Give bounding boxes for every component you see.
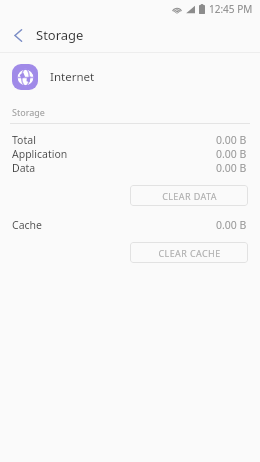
staticText: CLEAR DATA (162, 190, 217, 202)
button[interactable]: Application (0, 147, 260, 161)
button[interactable]: Back (6, 23, 30, 47)
button[interactable]: Data (0, 161, 260, 175)
button[interactable]: Internet (0, 53, 260, 101)
button[interactable]: CLEAR CACHE (130, 242, 248, 263)
staticText: 0.00 B (216, 147, 247, 161)
staticText: 0.00 B (216, 218, 247, 232)
staticText: 0.00 B (216, 133, 247, 147)
button[interactable]: Total (0, 133, 260, 147)
staticText: Data (12, 161, 36, 175)
staticText: 12:45 PM (209, 2, 253, 16)
button[interactable]: Cache (0, 218, 260, 232)
staticText: Storage (12, 106, 45, 118)
staticText: 0.00 B (216, 161, 247, 175)
staticText: Storage (36, 26, 84, 44)
staticText: Internet (50, 69, 95, 85)
staticText: Total (12, 133, 36, 147)
staticText: Cache (12, 218, 42, 232)
staticText: CLEAR CACHE (158, 247, 221, 259)
button[interactable]: CLEAR DATA (130, 185, 248, 206)
staticText: Application (12, 147, 68, 161)
